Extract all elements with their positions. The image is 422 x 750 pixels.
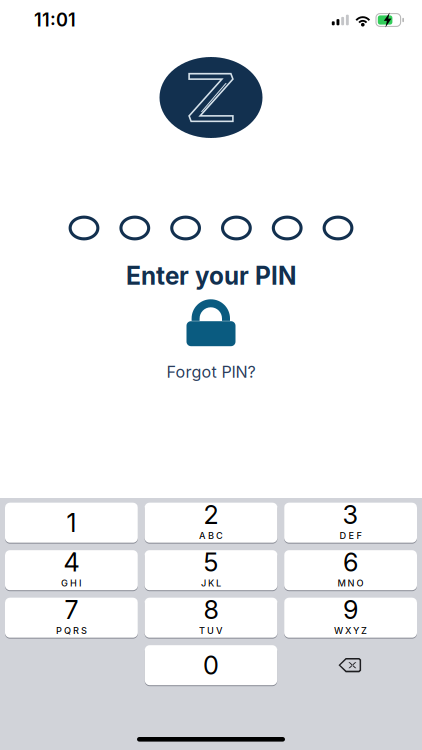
- button[interactable]: 7: [5, 598, 138, 638]
- staticText: 4: [63, 547, 79, 578]
- staticText: 0: [203, 650, 219, 681]
- staticText: 8: [203, 594, 218, 625]
- button[interactable]: 0: [145, 645, 277, 685]
- button[interactable]: 2: [145, 503, 277, 543]
- staticText: 11:01: [34, 9, 76, 31]
- button[interactable]: 3: [284, 503, 417, 543]
- staticText: A B C: [199, 530, 223, 541]
- staticText: G H I: [61, 578, 82, 589]
- staticText: T U V: [199, 625, 223, 636]
- staticText: 3: [343, 499, 359, 530]
- staticText: 7: [64, 594, 78, 625]
- staticText: 6: [343, 547, 358, 578]
- staticText: Enter your PIN: [126, 261, 296, 291]
- button[interactable]: 1: [5, 503, 138, 543]
- staticText: D E F: [340, 530, 362, 541]
- staticText: 1: [66, 507, 76, 538]
- staticText: J K L: [201, 578, 221, 589]
- button[interactable]: 9: [284, 598, 417, 638]
- button[interactable]: 6: [284, 550, 417, 590]
- staticText: M N O: [338, 578, 364, 589]
- button[interactable]: 8: [145, 598, 277, 638]
- staticText: 2: [203, 499, 218, 530]
- staticText: P Q R S: [56, 625, 87, 636]
- button[interactable]: 4: [5, 550, 138, 590]
- staticText: W X Y Z: [334, 625, 367, 636]
- button[interactable]: 5: [145, 550, 277, 590]
- staticText: 5: [203, 547, 218, 578]
- staticText: Forgot PIN?: [166, 362, 255, 382]
- button[interactable]: Delete: [338, 645, 363, 685]
- button[interactable]: Forgot PIN?: [160, 358, 261, 386]
- staticText: 9: [343, 594, 358, 625]
